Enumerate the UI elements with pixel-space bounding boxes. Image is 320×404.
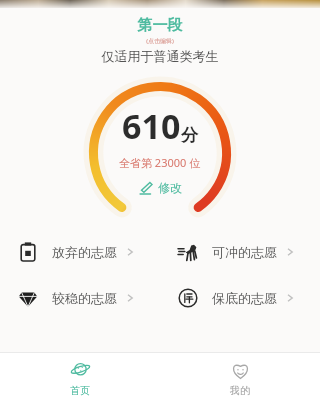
staticText: 放弃的志愿 [52,244,117,260]
staticText: 我的 [230,384,250,397]
staticText: 保底的志愿 [212,290,277,306]
staticText: (点击编辑) [0,37,320,45]
button[interactable]: 我的 [160,352,320,404]
button[interactable]: 可冲的志愿 [160,238,320,266]
staticText: 首页 [70,384,90,397]
button[interactable]: 较稳的志愿 [0,284,160,312]
staticText: 仅适用于普通类考生 [0,48,320,64]
staticText: 可冲的志愿 [212,244,277,260]
staticText: 分 [181,125,198,146]
button[interactable]: 放弃的志愿 [0,238,160,266]
staticText: 较稳的志愿 [52,290,117,306]
staticText: 全省第 23000 位 [119,155,201,170]
staticText: 第一段 [0,16,320,35]
button[interactable]: 首页 [0,352,160,404]
button[interactable]: 修改 [133,178,188,197]
staticText: 610 [122,103,181,149]
staticText: 修改 [158,180,182,195]
button[interactable]: 保底的志愿 [160,284,320,312]
